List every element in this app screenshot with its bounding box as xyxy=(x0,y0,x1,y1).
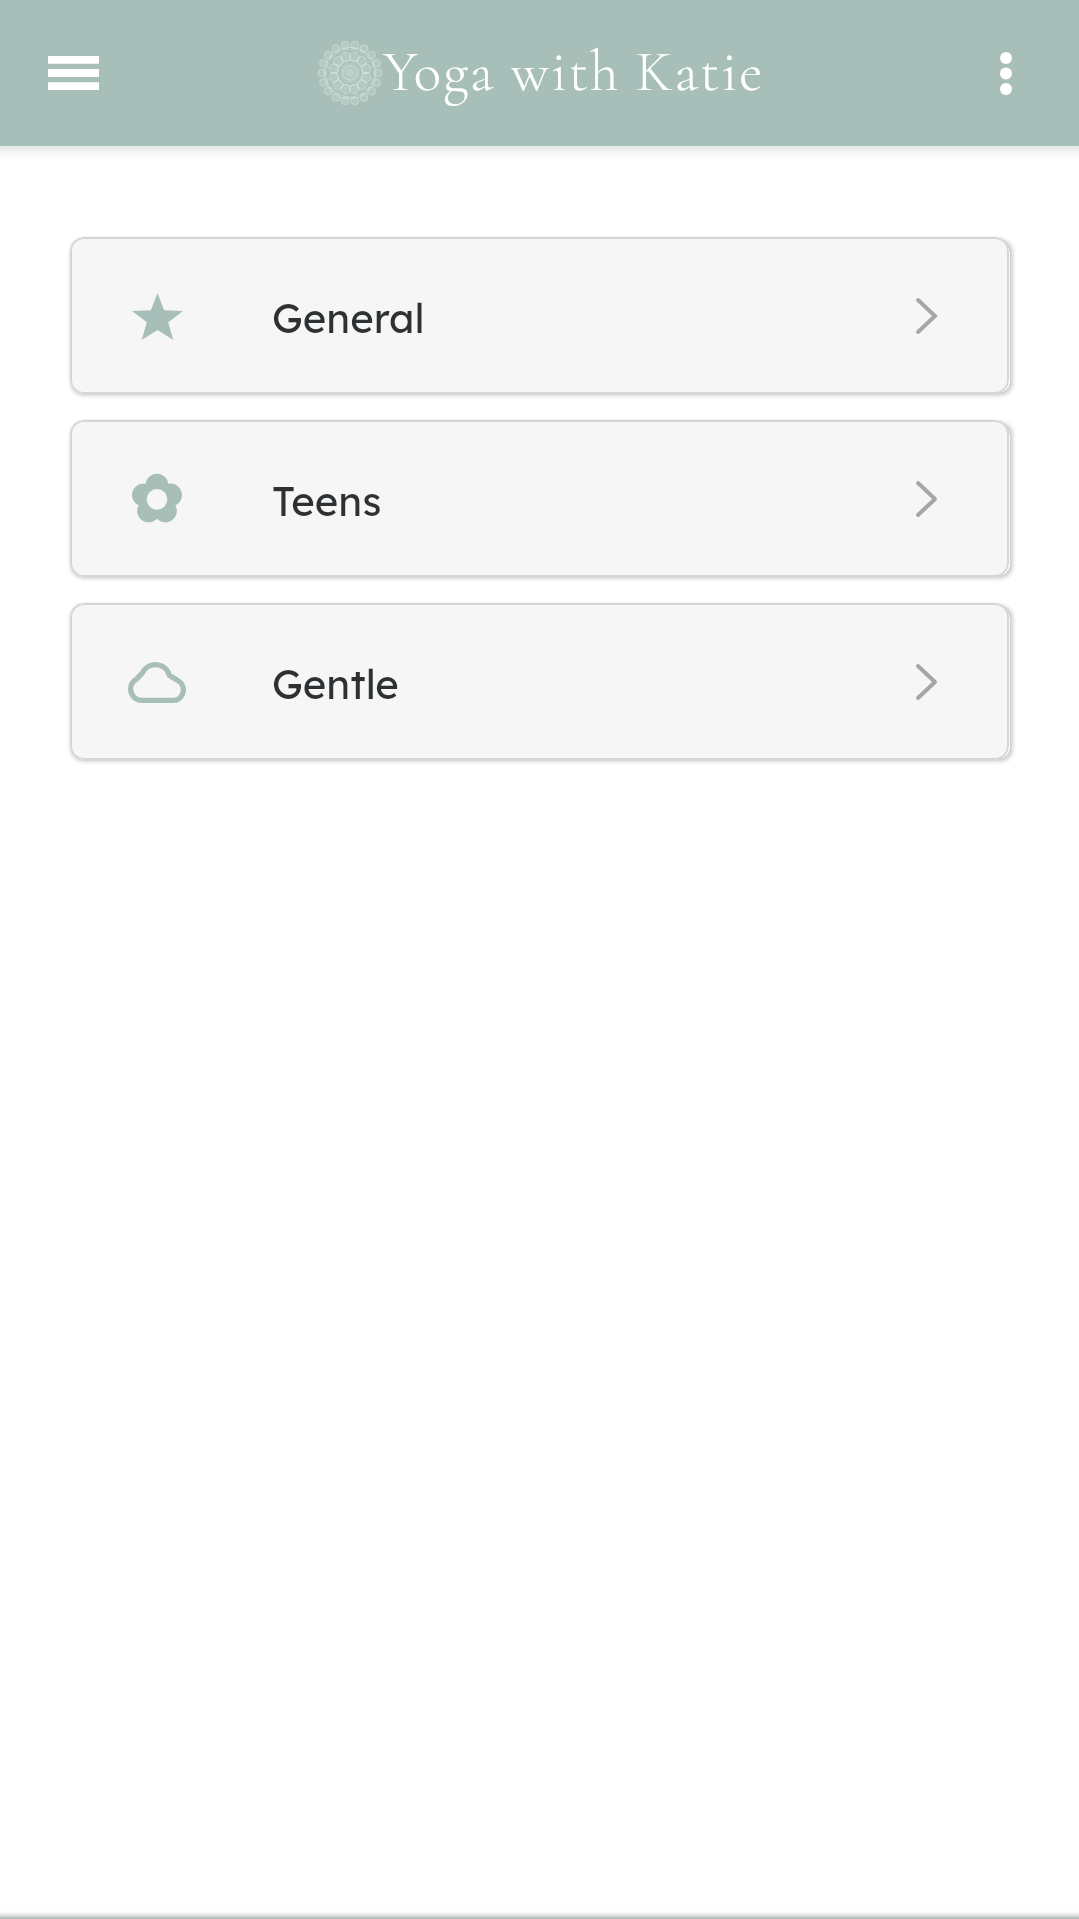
button[interactable]: General xyxy=(70,237,1009,394)
staticText: Yoga with Katie xyxy=(383,37,765,106)
button[interactable]: Teens xyxy=(70,420,1009,577)
staticText: General xyxy=(272,293,425,343)
staticText: Gentle xyxy=(272,659,399,709)
button[interactable]: Open navigation menu xyxy=(23,18,123,128)
button[interactable]: More options xyxy=(958,18,1053,128)
button[interactable]: Gentle xyxy=(70,603,1009,760)
staticText: Teens xyxy=(272,476,382,526)
